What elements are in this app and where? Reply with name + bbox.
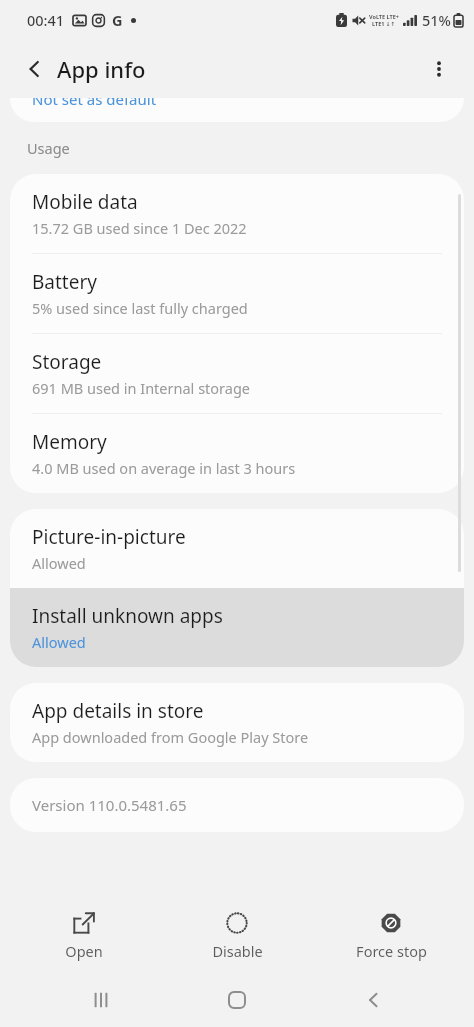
button[interactable]: Storage (10, 334, 464, 413)
staticText: Battery (32, 269, 97, 295)
button[interactable]: Battery (10, 254, 464, 333)
button[interactable]: Mobile data (10, 174, 464, 253)
staticText: Install unknown apps (32, 603, 223, 629)
staticText: Not set as default (32, 98, 157, 109)
button[interactable]: More options (417, 47, 461, 91)
staticText: 51% (422, 10, 451, 30)
staticText: 15.72 GB used since 1 Dec 2022 (32, 218, 247, 238)
staticText: Mobile data (32, 189, 138, 215)
staticText: Picture-in-picture (32, 524, 186, 550)
button[interactable]: Recents (65, 977, 137, 1023)
staticText: Usage (27, 138, 70, 158)
staticText: App downloaded from Google Play Store (32, 727, 309, 747)
button[interactable]: App details in store (10, 683, 464, 762)
staticText: 5% used since last fully charged (32, 298, 248, 318)
staticText: Open (65, 941, 103, 961)
button[interactable]: Picture-in-picture (10, 509, 464, 588)
staticText: Storage (32, 349, 102, 375)
button[interactable]: Install unknown apps (10, 588, 464, 667)
button[interactable]: Back (338, 977, 410, 1023)
button[interactable]: Force stop (321, 907, 461, 966)
button[interactable]: Disable (167, 907, 307, 966)
button[interactable]: Open (14, 907, 154, 966)
staticText: Version 110.0.5481.65 (32, 795, 187, 815)
staticText: App details in store (32, 698, 204, 724)
button[interactable]: Not set as default (10, 98, 464, 122)
button[interactable]: Home (201, 977, 273, 1023)
button[interactable]: Back (13, 47, 57, 91)
staticText: Allowed (32, 632, 86, 652)
staticText: Disable (212, 941, 263, 961)
staticText: 691 MB used in Internal storage (32, 378, 251, 398)
staticText: G (112, 10, 123, 30)
staticText: Allowed (32, 553, 86, 573)
staticText: VoLTE LTE+ (369, 13, 399, 20)
staticText: LTE1 ↓↑ (372, 20, 396, 27)
button[interactable]: Memory (10, 414, 464, 493)
staticText: Force stop (356, 941, 427, 961)
staticText: 00:41 (27, 10, 65, 30)
staticText: App info (57, 54, 146, 84)
staticText: Memory (32, 429, 107, 455)
staticText: 4.0 MB used on average in last 3 hours (32, 458, 296, 478)
